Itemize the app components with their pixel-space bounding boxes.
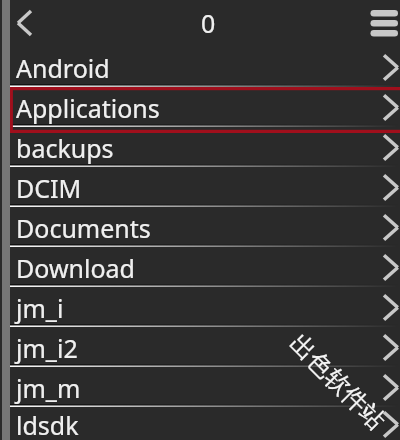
button[interactable]: Android xyxy=(0,46,400,86)
staticText: Documents xyxy=(16,211,151,245)
button[interactable]: ldsdk xyxy=(0,406,400,440)
button[interactable]: jm_i xyxy=(0,286,400,326)
staticText: Download xyxy=(16,251,135,285)
staticText: ldsdk xyxy=(16,408,79,440)
staticText: Applications xyxy=(16,91,160,125)
button[interactable]: Back xyxy=(8,3,42,43)
button[interactable]: Menu xyxy=(364,0,400,44)
button[interactable]: Documents xyxy=(0,206,400,246)
staticText: jm_i xyxy=(16,291,64,325)
button[interactable]: Download xyxy=(0,246,400,286)
staticText: jm_m xyxy=(16,371,81,405)
button[interactable]: jm_i2 xyxy=(0,326,400,366)
staticText: DCIM xyxy=(16,171,82,205)
staticText: Android xyxy=(16,51,110,85)
staticText: 0 xyxy=(201,6,216,40)
button[interactable]: jm_m xyxy=(0,366,400,406)
button[interactable]: backups xyxy=(0,126,400,166)
staticText: jm_i2 xyxy=(16,331,78,365)
button[interactable]: Applications xyxy=(0,86,400,126)
staticText: backups xyxy=(16,131,114,165)
button[interactable]: DCIM xyxy=(0,166,400,206)
